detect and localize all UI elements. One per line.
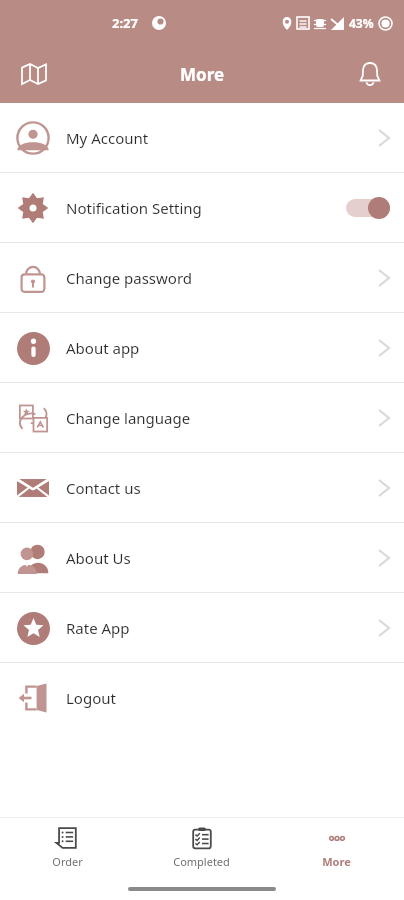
staticText: Order [52, 854, 83, 869]
button[interactable]: Change password [0, 243, 404, 312]
button[interactable]: About Us [0, 523, 404, 592]
button[interactable]: My Account [0, 103, 404, 172]
staticText: Contact us [66, 478, 378, 498]
staticText: More [322, 854, 351, 869]
staticText: 2:27 [112, 14, 138, 32]
staticText: My Account [66, 128, 378, 148]
staticText: 43% [349, 15, 374, 31]
button[interactable]: Notification Setting [0, 173, 404, 242]
button[interactable]: Logout [0, 663, 404, 732]
button[interactable]: Completed [134, 818, 269, 878]
staticText: Completed [173, 854, 230, 869]
button[interactable]: Rate App [0, 593, 404, 662]
staticText: About app [66, 338, 378, 358]
staticText: Change language [66, 408, 378, 428]
button[interactable]: Notifications [348, 52, 392, 96]
staticText: About Us [66, 548, 378, 568]
button[interactable]: Change language [0, 383, 404, 452]
staticText: Notification Setting [66, 198, 346, 218]
button[interactable]: About app [0, 313, 404, 382]
button[interactable] [346, 197, 390, 219]
staticText: Logout [66, 688, 390, 708]
button[interactable]: Contact us [0, 453, 404, 522]
button[interactable]: More [269, 818, 404, 878]
staticText: More [180, 63, 225, 86]
button[interactable]: Order [0, 818, 134, 878]
button[interactable]: Map [12, 52, 56, 96]
staticText: Rate App [66, 618, 378, 638]
staticText: Change password [66, 268, 378, 288]
